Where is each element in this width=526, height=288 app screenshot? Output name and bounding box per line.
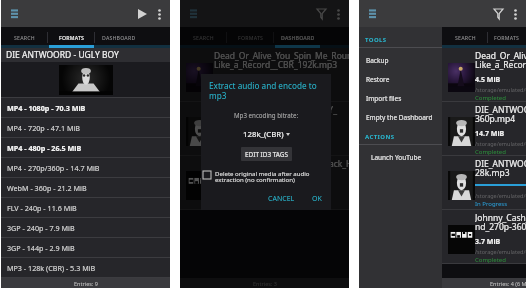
staticText: TOOLS	[365, 36, 387, 44]
staticText: Johnny_Cash_-_Hurt_Soundtrack_HD nd_270p…	[475, 212, 526, 233]
button[interactable]: WebM - 360p - 21.2 MiB	[1, 178, 170, 197]
button[interactable]: Johnny_Cash_-_Hurt_Soundtrack_HD nd_270p…	[180, 156, 349, 209]
button[interactable]: Restore	[359, 70, 442, 89]
staticText: Mp3 encoding bitrate:	[234, 111, 299, 119]
button[interactable]: SEARCH	[180, 27, 227, 48]
button[interactable]: Dead_Or_Alive_You_Spin_Me_Round_ Like_a_…	[180, 48, 349, 101]
staticText: Completed	[475, 148, 506, 155]
button[interactable]: 3GP - 240p - 7.9 MiB	[1, 218, 170, 237]
button[interactable]: Open navigation drawer	[185, 5, 202, 22]
staticText: DASHBOARD	[281, 34, 315, 41]
staticText: 3GP - 240p - 7.9 MiB	[7, 223, 75, 233]
button[interactable]: Import files	[359, 89, 442, 108]
button[interactable]: Empty the Dashboard	[359, 108, 442, 127]
staticText: Backup	[366, 56, 389, 65]
button[interactable]: MP4 - 720p - 47.1 MiB	[1, 118, 170, 137]
staticText: Completed	[214, 148, 245, 155]
staticText: SEARCH	[14, 34, 35, 41]
staticText: Completed	[214, 94, 245, 101]
staticText: MP4 - 270p/360p - 14.7 MiB	[7, 163, 100, 173]
button[interactable]: DASHBOARD	[95, 27, 142, 48]
staticText: Empty the Dashboard	[366, 113, 433, 122]
staticText: WebM - 360p - 21.2 MiB	[7, 183, 87, 193]
staticText: /storage/emulated/0/Download	[475, 140, 526, 147]
button[interactable]: Play	[135, 7, 149, 21]
staticText: Completed	[475, 256, 506, 263]
button[interactable]: Dead_Or_Alive_You_Spin_Me_Round_ Like_a_…	[442, 48, 526, 101]
staticText: Johnny_Cash_-_Hurt_Soundtrack_HD nd_270p…	[214, 158, 349, 179]
button[interactable]: Backup	[359, 51, 442, 70]
button[interactable]: 128k_(CBR)	[243, 129, 290, 140]
button[interactable]: DIE_ANTWOORD_-_UGLY_BOY_ 28k.mp3	[442, 156, 526, 209]
staticText: Launch YouTube	[371, 153, 422, 162]
button[interactable]: MP3 - 128k (CBR) - 5.3 MiB	[1, 258, 170, 277]
staticText: FORMATS	[59, 34, 85, 41]
button[interactable]: Johnny_Cash_-_Hurt_Soundtrack_HD nd_270p…	[442, 210, 526, 263]
staticText: Extract audio and encode to mp3	[209, 80, 317, 101]
staticText: /storage/emulated/0/Download	[214, 194, 296, 201]
staticText: Import files	[366, 94, 402, 103]
button[interactable]: EDIT ID3 TAGS	[241, 147, 292, 161]
staticText: Restore	[366, 75, 390, 84]
staticText: /storage/emulated/0/Download	[214, 86, 296, 93]
staticText: 14.7 MiB	[214, 129, 244, 139]
staticText: EDIT ID3 TAGS	[245, 150, 288, 159]
staticText: SEARCH	[193, 34, 214, 41]
staticText: 4.5 MiB	[214, 75, 240, 85]
button[interactable]: MP4 - 480p - 26.5 MiB	[1, 138, 170, 157]
staticText: 4.5 MiB	[475, 75, 501, 85]
button[interactable]: Launch YouTube	[359, 148, 442, 167]
button[interactable]: FORMATS	[227, 27, 274, 48]
staticText: 14.7 MiB	[475, 129, 505, 139]
button[interactable]: Filter	[314, 7, 328, 21]
staticText: In Progress	[475, 200, 508, 208]
staticText: Entries: 4 (6 MiB)	[490, 280, 526, 287]
button[interactable]: 3GP - 144p - 2.9 MiB	[1, 238, 170, 257]
staticText: MP4 - 480p - 26.5 MiB	[7, 143, 82, 153]
button[interactable]: MP4 - 1080p - 70.3 MiB	[1, 98, 170, 117]
staticText: /storage/emulated/0/Download	[475, 192, 526, 199]
button[interactable]: DIE_ANTWOORD_-_UGLY_BOY_ 360p.mp4	[442, 102, 526, 155]
staticText: SEARCH	[455, 34, 476, 41]
button[interactable]: FLV - 240p - 11.6 MiB	[1, 198, 170, 217]
button[interactable]: Open navigation drawer	[364, 5, 381, 22]
staticText: DASHBOARD	[102, 34, 136, 41]
staticText: OK	[312, 194, 322, 204]
staticText: DIE ANTWOORD - UGLY BOY	[6, 49, 119, 61]
button[interactable]: MP4 - 270p/360p - 14.7 MiB	[1, 158, 170, 177]
button[interactable]: SEARCH	[442, 27, 488, 48]
staticText: FORMATS	[494, 34, 520, 41]
staticText: /storage/emulated/0/Download	[475, 248, 526, 255]
staticText: 128k_(CBR)	[243, 129, 284, 140]
button[interactable]: FORMATS	[48, 27, 95, 48]
button[interactable]: DIE_ANTWOORD_-_UGLY_BOY_ 360p.mp4	[180, 102, 349, 155]
staticText: Dead_Or_Alive_You_Spin_Me_Round_ Like_a_…	[475, 50, 526, 71]
staticText: /storage/emulated/0/Download	[475, 86, 526, 93]
staticText: FLV - 240p - 11.6 MiB	[7, 203, 77, 213]
button[interactable]: CANCEL	[266, 192, 297, 206]
button[interactable]: More options	[510, 6, 521, 22]
button[interactable]: Filter	[491, 7, 505, 21]
staticText: Completed	[475, 94, 506, 101]
staticText: CANCEL	[268, 194, 295, 204]
staticText: Entries: 9	[74, 280, 98, 287]
button[interactable]: FORMATS	[488, 27, 526, 48]
staticText: Entries: 3	[253, 280, 277, 287]
button[interactable]: DASHBOARD	[274, 27, 321, 48]
button[interactable]: SEARCH	[1, 27, 48, 48]
staticText: 3GP - 144p - 2.9 MiB	[7, 243, 75, 253]
button[interactable]: Open navigation drawer	[6, 5, 23, 22]
button[interactable]: More options	[333, 6, 344, 22]
staticText: Dead_Or_Alive_You_Spin_Me_Round_ Like_a_…	[214, 50, 349, 71]
staticText: DIE_ANTWOORD_-_UGLY_BOY_ 360p.mp4	[214, 104, 337, 125]
button[interactable]: Delete original media after audio extrac…	[203, 169, 310, 184]
button[interactable]: More options	[154, 6, 165, 22]
staticText: FORMATS	[238, 34, 264, 41]
button[interactable]: OK	[310, 192, 324, 206]
staticText: MP4 - 720p - 47.1 MiB	[7, 123, 81, 133]
staticText: Delete original media after audio extrac…	[215, 169, 310, 184]
staticText: ACTIONS	[365, 133, 395, 141]
staticText: MP4 - 1080p - 70.3 MiB	[7, 103, 86, 113]
